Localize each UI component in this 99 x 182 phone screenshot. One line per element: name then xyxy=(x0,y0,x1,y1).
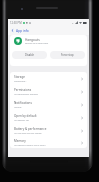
button[interactable]: Disable xyxy=(12,51,47,59)
staticText: 2 xyxy=(72,21,74,24)
button[interactable]: Battery & performance xyxy=(10,124,87,137)
button[interactable]: Open by default xyxy=(10,111,87,124)
staticText: Force stop xyxy=(61,53,74,57)
button[interactable]: Back xyxy=(9,27,16,34)
staticText: Memory xyxy=(14,139,26,143)
staticText: version 40.0.387534845 xyxy=(25,42,49,45)
staticText: App info xyxy=(16,29,29,33)
button[interactable]: Permissions xyxy=(10,85,87,98)
staticText: 12:30 PM xyxy=(10,21,22,25)
staticText: Permissions xyxy=(14,88,32,92)
staticText: Normal xyxy=(14,106,22,109)
staticText: Disable xyxy=(25,53,34,57)
staticText: No permissions granted xyxy=(14,93,38,96)
staticText: No memory used in last 3 hours xyxy=(14,144,46,147)
staticText: Hangouts xyxy=(25,38,40,42)
staticText: Notifications xyxy=(14,101,32,105)
staticText: Computing… xyxy=(14,80,27,83)
staticText: Open by default xyxy=(14,114,37,118)
staticText: Storage xyxy=(14,75,25,79)
button[interactable]: Storage xyxy=(10,72,87,85)
button[interactable]: Force stop xyxy=(50,51,85,59)
button[interactable]: Memory xyxy=(10,137,87,148)
staticText: No use since last full charge xyxy=(14,132,42,135)
staticText: Battery & performance xyxy=(14,127,47,131)
button[interactable]: Notifications xyxy=(10,98,87,111)
staticText: No defaults set xyxy=(14,119,29,122)
